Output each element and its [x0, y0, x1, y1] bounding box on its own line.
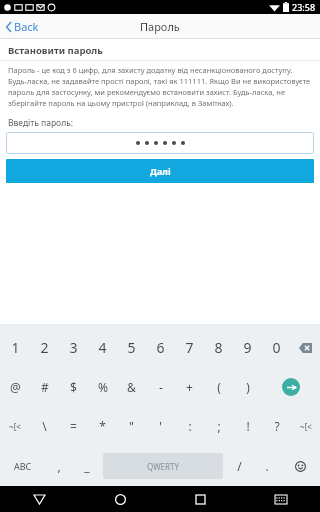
button[interactable]: 5 [117, 328, 146, 367]
staticText: $ [70, 379, 77, 395]
button[interactable]: Back [0, 16, 45, 37]
button[interactable]: + [175, 367, 204, 406]
staticText: Back [14, 19, 39, 34]
staticText: QWERTY [147, 461, 180, 472]
button[interactable]: 3 [59, 328, 88, 367]
staticText: \ [42, 418, 47, 434]
staticText: & [127, 379, 136, 395]
button[interactable]: 8 [204, 328, 233, 367]
staticText: ! [246, 418, 250, 434]
staticText: 6 [156, 338, 165, 357]
button[interactable]: \ [30, 406, 59, 446]
staticText: . [265, 458, 269, 474]
button[interactable]: # [30, 367, 59, 406]
button[interactable]: 9 [233, 328, 262, 367]
button[interactable]: / [225, 446, 253, 486]
button[interactable]: % [88, 367, 117, 406]
staticText: 9 [243, 338, 252, 357]
button[interactable]: ABC [0, 446, 45, 486]
button[interactable]: ~[< [291, 406, 320, 446]
staticText: Введіть пароль: [8, 117, 73, 129]
button[interactable]: ) [233, 367, 262, 406]
staticText: - [159, 379, 163, 395]
button[interactable]: Keyboard [266, 486, 296, 512]
button[interactable]: Home [105, 486, 135, 512]
staticText: Встановити пароль [8, 44, 103, 57]
button[interactable]: Emoji [281, 446, 320, 486]
staticText: : [188, 418, 192, 434]
staticText: 5 [127, 338, 136, 357]
button[interactable]: = [59, 406, 88, 446]
staticText: ' [159, 418, 162, 434]
button[interactable]: ~[< [0, 406, 30, 446]
staticText: , [57, 458, 61, 474]
button[interactable]: - [146, 367, 175, 406]
staticText: 2 [40, 338, 49, 357]
button[interactable]: 4 [88, 328, 117, 367]
staticText: _ [84, 458, 90, 474]
staticText: ? [274, 418, 280, 434]
staticText: / [237, 458, 242, 474]
button[interactable]: & [117, 367, 146, 406]
button[interactable]: 6 [146, 328, 175, 367]
staticText: # [41, 379, 49, 395]
staticText: ABC [14, 460, 32, 472]
button[interactable]: 0 [262, 328, 291, 367]
button[interactable]: , [45, 446, 73, 486]
staticText: " [129, 418, 134, 434]
button[interactable]: @ [0, 367, 30, 406]
staticText: ( [217, 379, 221, 395]
button[interactable]: 1 [0, 328, 30, 367]
staticText: ~[< [9, 421, 21, 432]
button[interactable]: Recents [185, 486, 215, 512]
staticText: 8 [214, 338, 223, 357]
button[interactable]: Space [103, 453, 223, 479]
staticText: @ [10, 379, 21, 395]
button[interactable]: ! [233, 406, 262, 446]
button[interactable]: Далі [6, 159, 314, 183]
staticText: 7 [185, 338, 194, 357]
button[interactable]: ; [204, 406, 233, 446]
staticText: 3 [69, 338, 78, 357]
button[interactable]: $ [59, 367, 88, 406]
button[interactable]: ' [146, 406, 175, 446]
button[interactable]: Back [24, 486, 54, 512]
staticText: ~[< [300, 421, 312, 432]
staticText: * [99, 418, 106, 434]
staticText: 23:58 [292, 1, 316, 13]
staticText: ; [217, 418, 221, 434]
button[interactable]: : [175, 406, 204, 446]
staticText: % [98, 379, 108, 395]
staticText: = [70, 418, 77, 434]
button[interactable]: Backspace [291, 328, 320, 367]
staticText: + [186, 379, 193, 395]
button[interactable] [6, 132, 314, 154]
button[interactable]: ? [262, 406, 291, 446]
button[interactable]: ( [204, 367, 233, 406]
staticText: 1 [11, 338, 20, 357]
staticText: ) [246, 379, 250, 395]
button[interactable]: 7 [175, 328, 204, 367]
button[interactable]: Enter [262, 367, 320, 406]
button[interactable]: " [117, 406, 146, 446]
button[interactable]: _ [73, 446, 101, 486]
staticText: Пароль - це код з 6 цифр, для захисту до… [8, 65, 312, 108]
staticText: Пароль [140, 19, 180, 34]
button[interactable]: 2 [30, 328, 59, 367]
button[interactable]: . [253, 446, 281, 486]
staticText: 4 [98, 338, 107, 357]
button[interactable]: * [88, 406, 117, 446]
staticText: 0 [272, 338, 281, 357]
staticText: Далі [150, 165, 171, 177]
